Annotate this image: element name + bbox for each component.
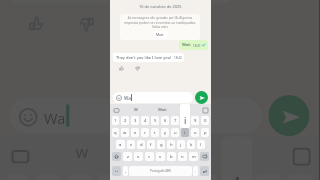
staticText: b bbox=[170, 154, 173, 160]
button[interactable]: m bbox=[189, 152, 198, 161]
button[interactable]: Shift bbox=[112, 152, 121, 161]
button[interactable]: Dislike bbox=[134, 65, 141, 72]
staticText: l bbox=[200, 142, 202, 148]
button[interactable]: 5 bbox=[151, 116, 159, 125]
button[interactable]: q bbox=[112, 128, 119, 137]
button[interactable]: 5 bbox=[129, 174, 155, 180]
staticText: o bbox=[194, 130, 197, 136]
button[interactable]: y bbox=[161, 128, 169, 137]
button[interactable]: Stickers bbox=[202, 107, 208, 113]
staticText: z bbox=[127, 154, 129, 160]
button[interactable]: x bbox=[134, 152, 143, 161]
button[interactable]: W bbox=[132, 107, 140, 113]
button[interactable]: t bbox=[151, 128, 159, 137]
button[interactable]: s bbox=[127, 140, 135, 149]
button[interactable]: Wa bbox=[113, 92, 193, 103]
staticText: 5 bbox=[154, 118, 157, 124]
button[interactable]: Send bbox=[195, 91, 208, 104]
button[interactable]: r bbox=[141, 128, 149, 137]
button[interactable]: 4 bbox=[141, 116, 149, 125]
button[interactable]: u bbox=[171, 128, 179, 137]
button[interactable]: g bbox=[157, 140, 165, 149]
button[interactable]: 7 bbox=[171, 116, 179, 125]
button[interactable]: n bbox=[178, 152, 187, 161]
staticText: 18:41 bbox=[193, 44, 201, 48]
staticText: Wa bbox=[124, 95, 131, 101]
staticText: f bbox=[150, 142, 152, 148]
button[interactable]: 7 bbox=[193, 174, 218, 180]
staticText: u bbox=[174, 130, 177, 136]
staticText: As mensagens são geradas por IA. Algumas… bbox=[122, 16, 198, 28]
button[interactable]: Clipboard bbox=[9, 146, 28, 165]
staticText: y bbox=[164, 130, 167, 136]
button[interactable]: l bbox=[197, 140, 205, 149]
button[interactable]: 1 bbox=[112, 116, 119, 125]
button[interactable]: Like bbox=[118, 65, 125, 72]
button[interactable]: w bbox=[121, 128, 129, 137]
button[interactable]: j bbox=[177, 140, 185, 149]
button[interactable]: 8 bbox=[181, 116, 189, 125]
button[interactable]: Like bbox=[25, 13, 47, 35]
button[interactable]: 8 bbox=[224, 174, 249, 180]
button[interactable]: 4 bbox=[98, 174, 123, 180]
staticText: 16 de outubro de 2025 bbox=[139, 4, 182, 9]
button[interactable]: e bbox=[131, 128, 139, 137]
button[interactable]: 3 bbox=[131, 116, 139, 125]
button[interactable]: Symbols bbox=[112, 166, 121, 176]
staticText: i bbox=[184, 114, 187, 126]
button[interactable]: Wait bbox=[156, 107, 169, 113]
button[interactable]: f bbox=[147, 140, 155, 149]
button[interactable]: Wait bbox=[145, 146, 186, 165]
button[interactable]: Stickers bbox=[290, 146, 309, 165]
staticText: . bbox=[195, 168, 197, 174]
button[interactable]: z bbox=[123, 152, 132, 161]
button[interactable]: 9 bbox=[191, 116, 199, 125]
staticText: w bbox=[123, 130, 127, 136]
button[interactable]: o bbox=[191, 128, 199, 137]
button[interactable]: h bbox=[167, 140, 175, 149]
button[interactable]: Português (BR) bbox=[129, 166, 192, 176]
button[interactable]: d bbox=[137, 140, 145, 149]
staticText: Português (BR) bbox=[150, 169, 172, 173]
staticText: j bbox=[180, 142, 182, 148]
staticText: 7 bbox=[174, 118, 177, 124]
button[interactable]: c bbox=[145, 152, 154, 161]
button[interactable]: v bbox=[156, 152, 165, 161]
staticText: i bbox=[184, 130, 186, 136]
button[interactable]: 6 bbox=[161, 116, 169, 125]
staticText: h bbox=[170, 142, 173, 148]
staticText: x bbox=[137, 154, 140, 160]
button[interactable]: p bbox=[201, 128, 209, 137]
button[interactable]: b bbox=[167, 152, 176, 161]
button[interactable]: They don't you like I love you! bbox=[9, 0, 234, 3]
button[interactable]: Enter bbox=[200, 166, 209, 176]
staticText: i bbox=[234, 168, 243, 180]
button[interactable]: Send bbox=[268, 95, 309, 136]
button[interactable]: i bbox=[181, 128, 189, 137]
button[interactable]: Wait bbox=[179, 40, 208, 50]
button[interactable]: k bbox=[187, 140, 195, 149]
button[interactable]: Dislike bbox=[76, 13, 98, 35]
button[interactable]: 0 bbox=[201, 116, 209, 125]
button[interactable]: Wa bbox=[9, 98, 262, 133]
button[interactable]: 2 bbox=[121, 116, 129, 125]
button[interactable]: 6 bbox=[161, 174, 186, 180]
button[interactable]: Mais bbox=[153, 31, 167, 38]
staticText: g bbox=[160, 142, 163, 148]
button[interactable]: a bbox=[116, 140, 125, 149]
staticText: m bbox=[192, 154, 196, 160]
button[interactable]: , bbox=[123, 166, 128, 176]
staticText: k bbox=[190, 142, 193, 148]
staticText: c bbox=[148, 154, 151, 160]
button[interactable]: W bbox=[69, 146, 95, 165]
button[interactable]: Backspace bbox=[200, 152, 209, 161]
staticText: 4 bbox=[144, 118, 147, 124]
button[interactable]: Clipboard bbox=[113, 107, 119, 113]
button[interactable]: They don't you like I love you! bbox=[113, 53, 184, 62]
button[interactable]: . bbox=[193, 166, 198, 176]
